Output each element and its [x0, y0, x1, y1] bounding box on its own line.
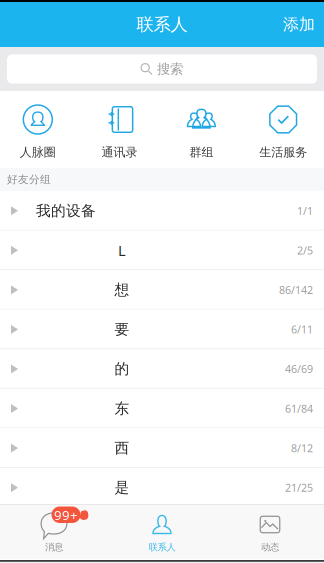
staticText: 好友分组 [7, 173, 51, 186]
button[interactable]: 联系人 [108, 504, 216, 559]
button[interactable]: 我的设备 [0, 191, 324, 230]
staticText: 99+ [54, 506, 78, 524]
staticText: 8/12 [291, 441, 313, 455]
button[interactable]: 搜索 [7, 54, 317, 83]
staticText: 6/11 [291, 322, 313, 336]
staticText: 2/5 [297, 243, 313, 257]
staticText: 东 [114, 399, 129, 417]
button[interactable]: 添加 [283, 7, 324, 42]
staticText: 联系人 [148, 541, 175, 553]
staticText: 想 [114, 281, 129, 299]
staticText: 是 [114, 479, 129, 497]
button[interactable]: 人脉圈 [0, 91, 78, 168]
button[interactable]: 想 [0, 270, 324, 310]
button[interactable]: 的 [0, 349, 324, 389]
staticText: 86/142 [279, 283, 313, 297]
staticText: 的 [114, 360, 129, 378]
staticText: 西 [114, 439, 129, 457]
button[interactable]: 群组 [161, 91, 241, 168]
staticText: 人脉圈 [20, 145, 56, 160]
staticText: 搜索 [157, 61, 183, 77]
staticText: 46/69 [285, 362, 313, 376]
staticText: 要 [114, 320, 129, 338]
button[interactable]: 东 [0, 389, 324, 428]
staticText: 联系人 [136, 14, 187, 35]
staticText: 添加 [283, 15, 315, 34]
staticText: 1/1 [297, 204, 313, 218]
button[interactable]: 西 [0, 428, 324, 468]
button[interactable]: 要 [0, 310, 324, 349]
staticText: 群组 [189, 145, 213, 160]
staticText: 21/25 [285, 480, 313, 495]
staticText: 生活服务 [259, 145, 307, 160]
button[interactable]: 生活服务 [243, 91, 323, 168]
button[interactable]: 消息 [0, 504, 108, 559]
staticText: 动态 [261, 541, 279, 553]
staticText: 61/84 [285, 401, 313, 416]
staticText: 通讯录 [102, 145, 138, 160]
staticText: 我的设备 [36, 202, 96, 220]
button[interactable]: 动态 [216, 504, 324, 559]
staticText: 消息 [45, 541, 63, 553]
button[interactable]: 通讯录 [80, 91, 160, 168]
button[interactable]: L [0, 231, 324, 270]
button[interactable]: 是 [0, 468, 324, 507]
staticText: L [118, 241, 126, 260]
